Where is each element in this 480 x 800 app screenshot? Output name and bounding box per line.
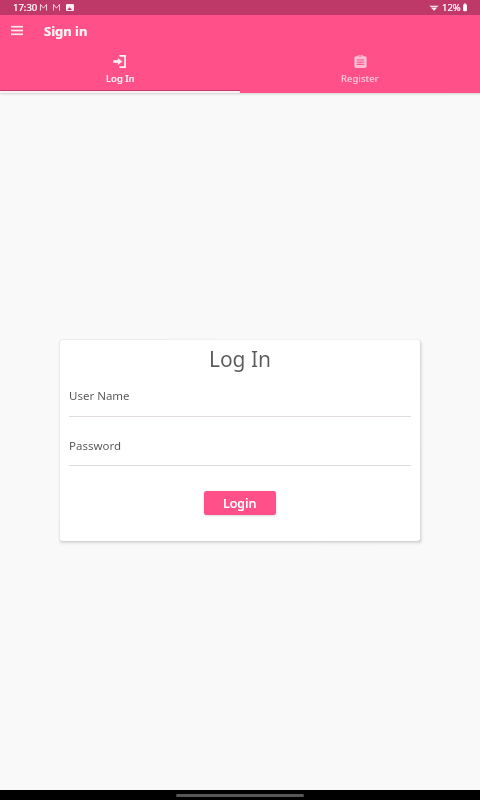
staticText: 17:30: [13, 1, 38, 14]
staticText: Log In: [60, 345, 420, 374]
staticText: User Name: [69, 388, 130, 404]
button[interactable]: Open navigation menu: [0, 14, 34, 47]
button[interactable]: User Name: [69, 384, 411, 417]
button[interactable]: Register: [240, 48, 480, 93]
staticText: 12%: [442, 1, 461, 14]
button[interactable]: Password: [69, 433, 411, 466]
staticText: Register: [341, 72, 379, 85]
button[interactable]: Log In: [0, 48, 240, 93]
staticText: Login: [223, 495, 257, 512]
staticText: Sign in: [44, 22, 88, 40]
staticText: Password: [69, 438, 122, 454]
staticText: Log In: [106, 72, 135, 85]
button[interactable]: Login: [204, 491, 276, 515]
